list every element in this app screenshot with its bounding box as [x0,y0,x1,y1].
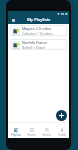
staticText: Search [42,133,51,137]
button[interactable]: Search [39,126,54,138]
staticText: Norfolk France [22,40,48,45]
button[interactable]: Menu [10,17,17,24]
button[interactable]: Profile [54,126,69,138]
button[interactable]: Norfolk France [10,39,67,50]
staticText: Profile [58,133,66,137]
staticText: Magien 2.0 video [22,26,52,31]
staticText: My Playlists [27,17,51,23]
button[interactable]: Magien 2.0 video [10,25,67,36]
button[interactable]: Browse [24,126,39,138]
staticText: Browse [27,133,36,137]
button[interactable]: Playlists [8,126,24,138]
staticText: Playlists [11,133,21,137]
staticText: Norfolk | Digital [22,46,45,50]
button[interactable]: Add playlist [56,110,67,121]
staticText: Collection | 14 videos [22,32,53,36]
